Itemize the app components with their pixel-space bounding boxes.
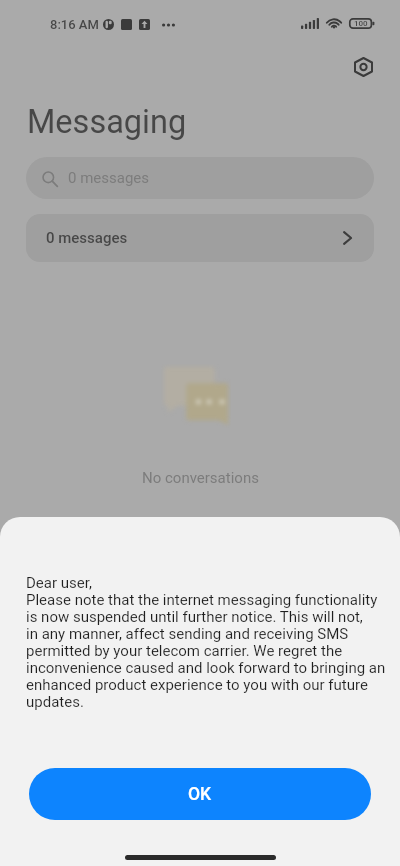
staticText: 8:16 AM: [50, 17, 99, 32]
staticText: OK: [188, 784, 212, 805]
staticText: 0 messages: [68, 169, 150, 187]
button[interactable]: 0 messages: [26, 214, 374, 262]
staticText: Dear user, Please note that the internet…: [26, 574, 386, 710]
button[interactable]: OK: [29, 768, 371, 820]
staticText: No conversations: [142, 469, 259, 487]
button[interactable]: 0 messages: [26, 157, 374, 199]
button[interactable]: Settings: [348, 51, 379, 82]
staticText: 0 messages: [46, 229, 128, 247]
staticText: 100: [354, 19, 368, 28]
staticText: Messaging: [27, 103, 187, 141]
